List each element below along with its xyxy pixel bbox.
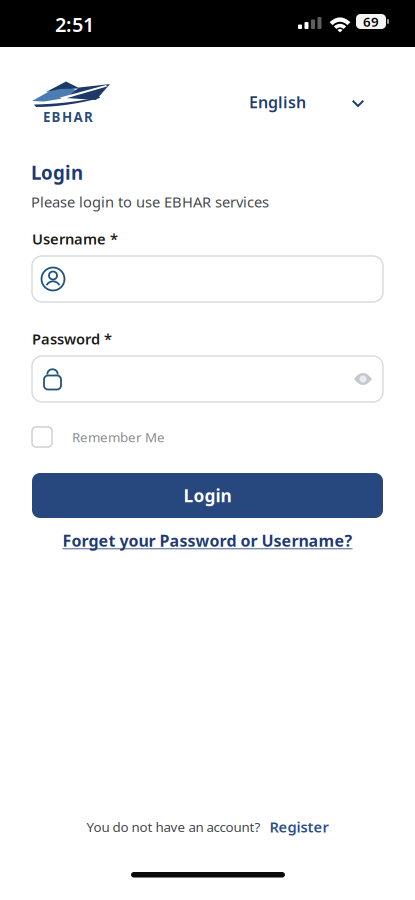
staticText: You do not have an account? [86, 818, 260, 836]
staticText: Login [183, 484, 231, 507]
button[interactable]: Show password [354, 371, 372, 387]
staticText: Username * [32, 229, 118, 248]
button[interactable]: Remember Me [32, 427, 165, 447]
staticText: English [249, 91, 306, 113]
staticText: Forget your Password or Username? [62, 530, 352, 551]
button[interactable]: You do not have an account? [0, 817, 415, 836]
staticText: EBHAR [43, 108, 93, 126]
staticText: Remember Me [72, 428, 165, 446]
staticText: Login [31, 160, 83, 185]
staticText: Register [269, 817, 328, 836]
button[interactable]: Password [32, 356, 383, 402]
button[interactable]: Username [32, 256, 383, 302]
button[interactable]: Login [32, 473, 383, 518]
button[interactable]: Forget your Password or Username? [0, 530, 415, 551]
staticText: 69 [363, 13, 379, 30]
staticText: Please login to use EBHAR services [31, 192, 269, 211]
staticText: 2:51 [55, 11, 94, 38]
button[interactable]: English [249, 89, 365, 115]
staticText: Password * [32, 329, 112, 348]
